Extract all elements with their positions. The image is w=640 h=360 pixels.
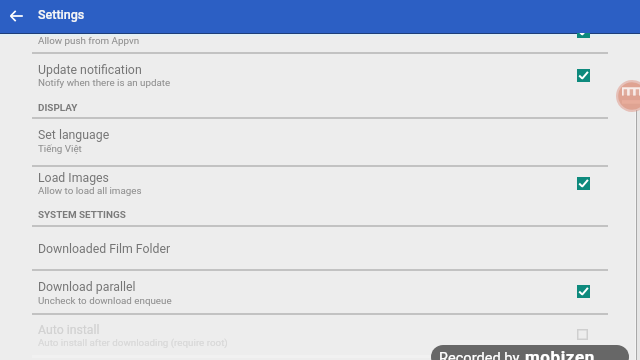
button[interactable]: Checked — [562, 170, 603, 197]
button[interactable] — [0, 315, 640, 360]
button[interactable]: Checked — [562, 278, 603, 305]
staticText: Downloaded Film Folder — [38, 242, 171, 256]
button[interactable] — [0, 119, 640, 166]
button[interactable] — [0, 271, 640, 315]
staticText: mobizen — [525, 347, 595, 360]
staticText: DISPLAY — [38, 102, 78, 114]
button[interactable] — [0, 167, 640, 211]
staticText: Recorded by — [439, 349, 520, 360]
button[interactable] — [0, 33, 640, 53]
staticText: Notify when there is an update — [38, 77, 171, 88]
button[interactable]: Unchecked — [562, 321, 603, 348]
button[interactable]: Checked — [562, 62, 603, 89]
staticText: Allow push from Appvn — [38, 35, 140, 46]
staticText: Auto install after downloading (require … — [38, 337, 228, 348]
button[interactable] — [0, 227, 640, 270]
staticText: Uncheck to download enqueue — [38, 295, 172, 306]
staticText: Load Images — [38, 171, 109, 185]
button[interactable]: Back — [0, 0, 33, 33]
staticText: Auto install — [38, 323, 100, 337]
staticText: Set language — [38, 128, 110, 142]
staticText: SYSTEM SETTINGS — [38, 209, 126, 221]
staticText: Allow to load all images — [38, 185, 142, 196]
button[interactable]: Mobizen recorder — [616, 80, 640, 112]
button[interactable] — [0, 54, 640, 98]
staticText: Settings — [38, 7, 85, 22]
staticText: Tiếng Việt — [38, 143, 82, 154]
staticText: Download parallel — [38, 280, 136, 294]
staticText: Update notification — [38, 63, 142, 77]
